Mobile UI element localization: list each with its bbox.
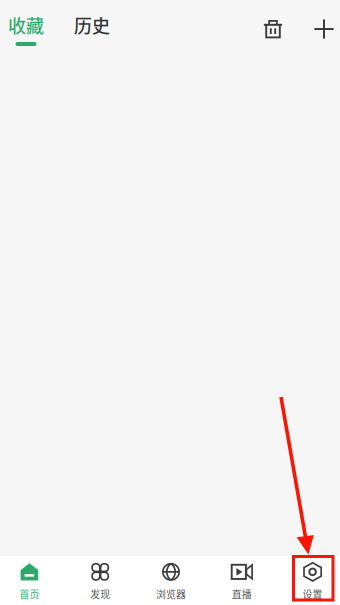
button[interactable]: 发现 bbox=[65, 556, 136, 605]
button[interactable]: 首页 bbox=[0, 556, 65, 605]
staticText: 浏览器 bbox=[156, 587, 186, 601]
button[interactable]: 直播 bbox=[206, 556, 277, 605]
staticText: 设置 bbox=[303, 587, 323, 601]
staticText: 收藏 bbox=[8, 12, 44, 38]
staticText: 历史 bbox=[74, 12, 110, 38]
staticText: 直播 bbox=[232, 587, 252, 601]
button[interactable]: 设置 bbox=[277, 556, 340, 605]
button[interactable]: Delete bbox=[254, 10, 292, 48]
button[interactable]: 历史 bbox=[74, 12, 110, 46]
button[interactable]: 浏览器 bbox=[136, 556, 206, 605]
button[interactable]: 收藏 bbox=[8, 12, 44, 46]
button[interactable]: Add bbox=[305, 10, 340, 48]
staticText: 首页 bbox=[19, 587, 39, 601]
staticText: 发现 bbox=[90, 587, 110, 601]
